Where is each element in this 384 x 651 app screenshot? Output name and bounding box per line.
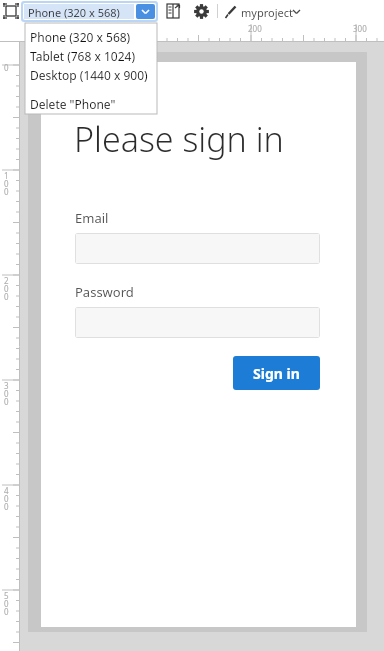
staticText: Please sign in [74, 116, 284, 162]
staticText: Tablet (768 x 1024) [30, 48, 135, 64]
staticText: 0 [4, 598, 9, 609]
staticText: 0 [4, 186, 9, 197]
staticText: myproject [241, 5, 293, 20]
button[interactable]: Phone (320 x 568) [23, 3, 156, 20]
staticText: 0 [4, 178, 9, 189]
button[interactable]: Phone (320 x 568) [25, 27, 157, 45]
button[interactable]: Artboard [3, 3, 19, 19]
staticText: 200 [248, 23, 262, 34]
staticText: 0 [4, 396, 9, 407]
button[interactable]: Delete "Phone" [25, 94, 157, 112]
staticText: 0 [4, 501, 9, 512]
button[interactable]: Tablet (768 x 1024) [25, 46, 157, 64]
staticText: 0 [4, 291, 9, 302]
button[interactable]: Sign in [233, 356, 320, 390]
staticText: 5 [4, 590, 9, 601]
staticText: 0 [4, 493, 9, 504]
staticText: Email [75, 209, 109, 227]
staticText: Password [75, 283, 134, 301]
staticText: 0 [4, 606, 9, 617]
staticText: 2 [4, 275, 9, 286]
staticText: 0 [4, 62, 9, 73]
button[interactable] [75, 307, 320, 338]
staticText: 3 [4, 380, 9, 391]
button[interactable]: Duplicate artboard [166, 3, 182, 19]
button[interactable] [75, 233, 320, 264]
button[interactable]: Theme [224, 4, 240, 20]
button[interactable]: myproject [241, 3, 303, 20]
staticText: Delete "Phone" [30, 96, 116, 112]
staticText: Phone (320 x 568) [28, 5, 120, 20]
staticText: Sign in [253, 364, 300, 383]
staticText: 0 [4, 388, 9, 399]
staticText: 0 [4, 283, 9, 294]
button[interactable]: Settings [193, 3, 210, 20]
staticText: Desktop (1440 x 900) [30, 67, 148, 83]
staticText: Phone (320 x 568) [30, 29, 131, 45]
staticText: 300 [353, 23, 367, 34]
button[interactable]: Desktop (1440 x 900) [25, 65, 157, 83]
staticText: 1 [4, 170, 9, 181]
staticText: 4 [4, 485, 9, 496]
